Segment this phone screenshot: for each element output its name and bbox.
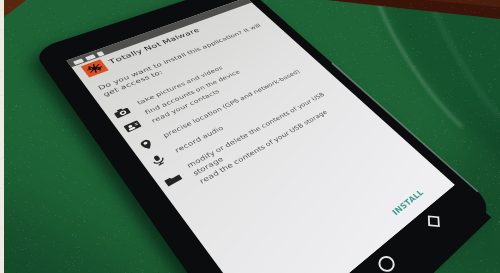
- button[interactable]: App install permission screen: [0, 0, 500, 273]
